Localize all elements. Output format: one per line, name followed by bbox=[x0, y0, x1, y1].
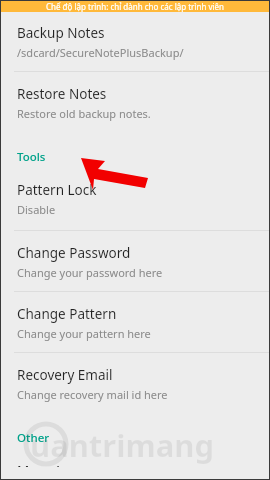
staticText: Recovery Email bbox=[17, 366, 113, 384]
staticText: Disable bbox=[17, 202, 56, 217]
staticText: Other bbox=[17, 430, 50, 446]
button[interactable]: Pattern Lock bbox=[0, 172, 270, 231]
staticText: Pattern Lock bbox=[17, 181, 97, 199]
staticText: Change Password bbox=[17, 244, 131, 262]
button[interactable]: Backup Notes bbox=[0, 12, 270, 72]
staticText: uantrimang bbox=[30, 424, 214, 466]
staticText: /sdcard/SecureNotePlusBackup/ bbox=[17, 45, 184, 60]
button[interactable]: Change Password bbox=[0, 231, 270, 292]
staticText: Restore Notes bbox=[17, 85, 107, 103]
staticText: Change your password here bbox=[17, 265, 163, 280]
staticText: Backup Notes bbox=[17, 24, 105, 42]
staticText: Change your pattern here bbox=[17, 326, 151, 341]
button[interactable]: Recovery Email bbox=[0, 353, 270, 413]
button[interactable]: Change Pattern bbox=[0, 292, 270, 353]
staticText: Tools bbox=[17, 149, 46, 165]
staticText: More Apps bbox=[17, 462, 86, 467]
button[interactable]: Restore Notes bbox=[0, 72, 270, 132]
staticText: Chế độ lập trình: chỉ dành cho các lập t… bbox=[46, 1, 224, 12]
staticText: Change recovery mail id here bbox=[17, 387, 168, 402]
staticText: Change Pattern bbox=[17, 305, 117, 323]
staticText: Restore old backup notes. bbox=[17, 106, 151, 121]
button[interactable]: More Apps bbox=[0, 453, 270, 480]
